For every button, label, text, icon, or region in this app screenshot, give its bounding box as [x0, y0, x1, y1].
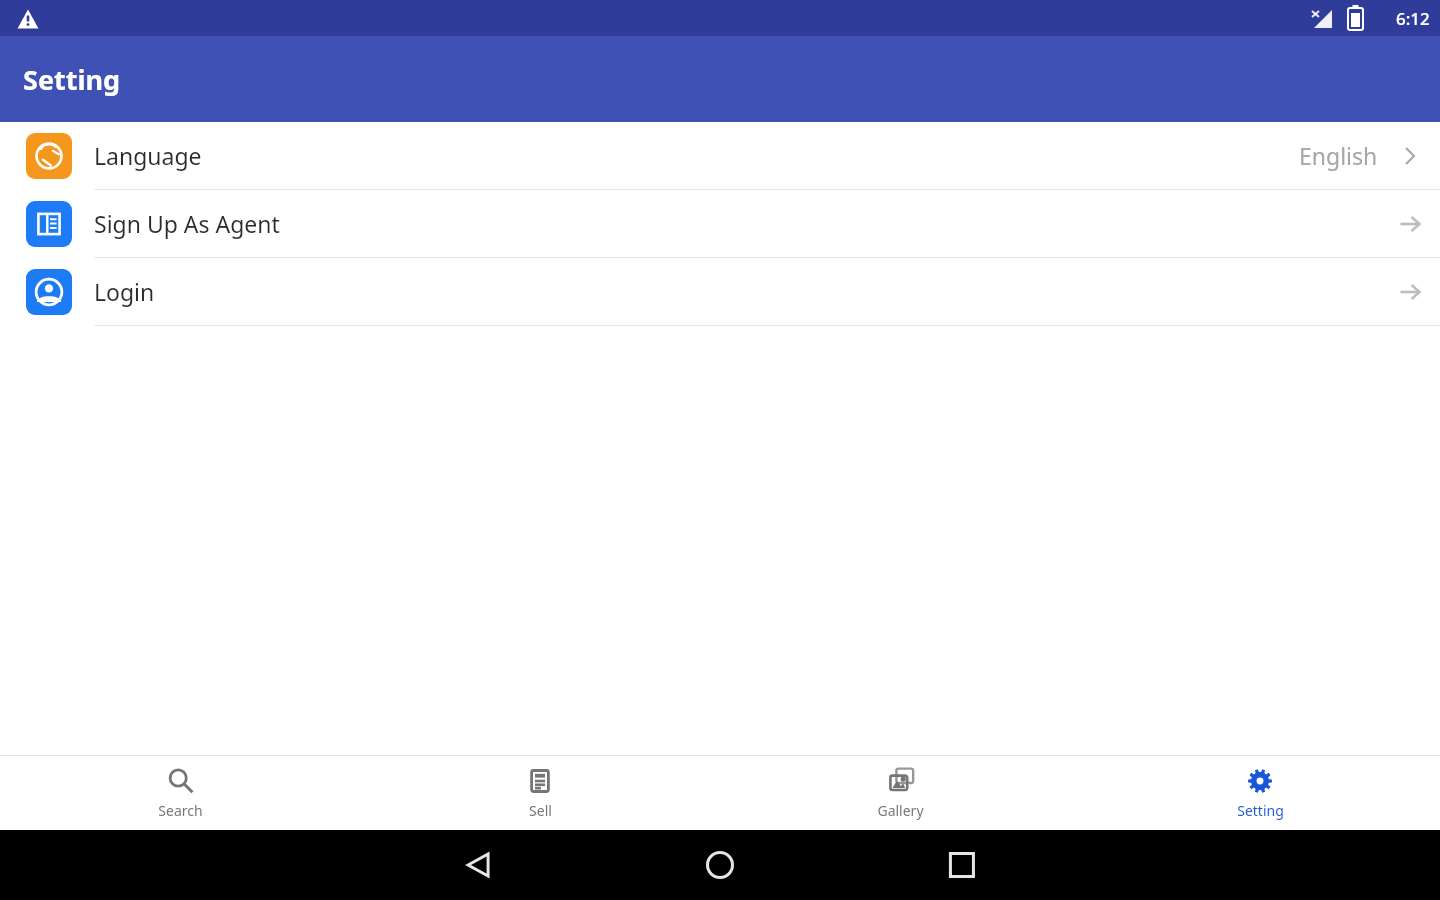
- button[interactable]: Sell: [360, 756, 720, 830]
- button[interactable]: Language: [0, 122, 1440, 189]
- button[interactable]: Sign Up As Agent: [0, 190, 1440, 257]
- staticText: Sell: [529, 801, 552, 820]
- staticText: Search: [158, 801, 203, 820]
- button[interactable]: Login: [0, 258, 1440, 325]
- staticText: Setting: [1237, 801, 1284, 820]
- button[interactable]: Search: [0, 756, 360, 830]
- button[interactable]: Gallery: [720, 756, 1080, 830]
- staticText: Sign Up As Agent: [94, 208, 1388, 239]
- button[interactable]: Setting: [1080, 756, 1440, 830]
- staticText: 6:12: [1396, 7, 1430, 30]
- staticText: Language: [94, 140, 1299, 171]
- staticText: Gallery: [877, 801, 924, 820]
- staticText: Setting: [23, 61, 121, 98]
- staticText: Login: [94, 276, 1388, 307]
- staticText: English: [1299, 140, 1378, 171]
